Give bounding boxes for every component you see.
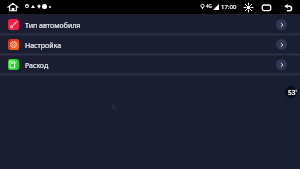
button[interactable]: Тип автомобиля <box>0 14 300 34</box>
staticText: Настройка <box>25 41 62 51</box>
button[interactable]: Home <box>5 0 20 14</box>
button[interactable]: Настройка <box>0 34 300 54</box>
button[interactable]: Brightness <box>241 0 255 14</box>
button[interactable]: Temperature 53 degrees <box>285 86 297 98</box>
button[interactable]: Open Настройка <box>276 39 287 50</box>
button[interactable]: Open Расход <box>276 59 287 70</box>
button[interactable]: Recent apps <box>259 0 273 14</box>
staticText: Расход <box>25 61 49 71</box>
staticText: 53° <box>288 88 297 97</box>
staticText: Тип автомобиля <box>25 21 81 31</box>
staticText: 17:00 <box>221 3 237 11</box>
button[interactable]: Расход <box>0 54 300 74</box>
button[interactable]: Open Тип автомобиля <box>276 19 287 30</box>
button[interactable]: Back <box>281 0 295 14</box>
staticText: 4G <box>206 3 212 9</box>
